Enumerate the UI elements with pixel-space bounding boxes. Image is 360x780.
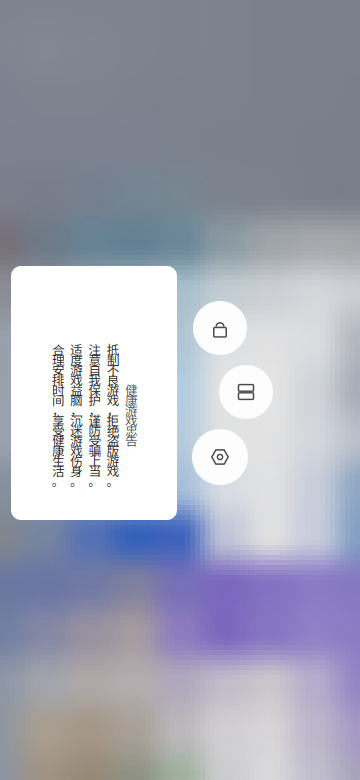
staticText: ， <box>70 401 83 419</box>
staticText: 谨 <box>88 411 101 429</box>
staticText: 。 <box>70 472 83 490</box>
staticText: 盗 <box>107 431 120 449</box>
staticText: 良 <box>107 371 120 389</box>
staticText: 拒 <box>107 411 120 429</box>
button[interactable]: Privacy lock <box>193 301 247 355</box>
staticText: 身 <box>70 461 83 480</box>
staticText: 合 <box>52 340 65 358</box>
staticText: 沉 <box>70 411 83 429</box>
staticText: 游 <box>125 401 138 419</box>
staticText: 护 <box>88 391 101 409</box>
staticText: 注 <box>88 340 101 358</box>
staticText: 。 <box>52 472 65 490</box>
staticText: 意 <box>88 350 101 368</box>
staticText: 自 <box>88 360 101 379</box>
staticText: 戏 <box>125 411 138 429</box>
staticText: 受 <box>88 431 101 449</box>
staticText: 戏 <box>107 461 120 480</box>
staticText: 抵 <box>107 340 120 358</box>
staticText: 戏 <box>70 371 83 389</box>
staticText: 安 <box>52 360 65 379</box>
staticText: 保 <box>88 381 101 399</box>
staticText: 适 <box>70 340 83 358</box>
staticText: 迷 <box>70 421 83 439</box>
staticText: 伤 <box>70 451 83 469</box>
staticText: 绝 <box>107 421 120 439</box>
staticText: 康 <box>125 391 138 409</box>
staticText: 生 <box>52 451 65 469</box>
staticText: 度 <box>70 350 83 368</box>
staticText: 我 <box>88 371 101 389</box>
button[interactable]: Servers <box>219 365 273 419</box>
staticText: 当 <box>88 461 101 480</box>
staticText: 制 <box>107 350 120 368</box>
staticText: ， <box>107 401 120 419</box>
staticText: 健 <box>125 381 138 399</box>
staticText: 。 <box>88 472 101 490</box>
staticText: 康 <box>52 441 65 459</box>
staticText: 戏 <box>70 441 83 459</box>
staticText: 脑 <box>70 391 83 409</box>
staticText: 防 <box>88 421 101 439</box>
staticText: 游 <box>70 360 83 379</box>
staticText: 。 <box>107 472 120 490</box>
staticText: 游 <box>107 381 120 399</box>
staticText: 间 <box>52 391 65 409</box>
staticText: 版 <box>107 441 120 459</box>
staticText: 时 <box>52 381 65 399</box>
staticText: 上 <box>88 451 101 469</box>
staticText: 活 <box>52 461 65 480</box>
staticText: 受 <box>52 421 65 439</box>
staticText: 不 <box>107 360 120 379</box>
staticText: 游 <box>70 431 83 449</box>
staticText: 益 <box>70 381 83 399</box>
staticText: 游 <box>107 451 120 469</box>
button[interactable]: Settings <box>192 429 248 485</box>
staticText: 理 <box>52 350 65 368</box>
staticText: 排 <box>52 371 65 389</box>
staticText: 健 <box>52 431 65 449</box>
staticText: 忠 <box>125 421 138 439</box>
staticText: ， <box>88 401 101 419</box>
staticText: 享 <box>52 411 65 429</box>
staticText: ， <box>52 401 65 419</box>
staticText: 戏 <box>107 391 120 409</box>
staticText: 告 <box>125 431 138 449</box>
staticText: 骗 <box>88 441 101 459</box>
